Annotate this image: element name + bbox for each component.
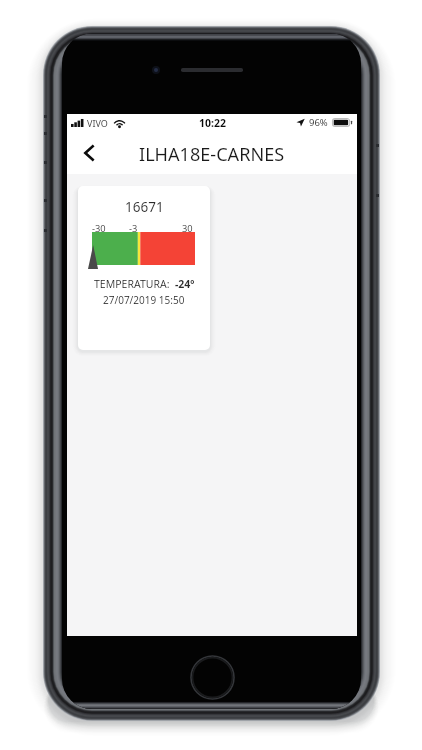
staticText: -3 [129,222,138,235]
button[interactable]: Back [71,133,107,172]
staticText: 27/07/2019 15:50 [103,293,185,307]
staticText: ILHA18E-CARNES [139,142,285,167]
staticText: -24º [175,277,195,291]
staticText: 16671 [125,198,164,216]
staticText: TEMPERATURA: [94,277,170,291]
staticText: VIVO [87,117,108,129]
staticText: 10:22 [199,116,226,130]
staticText: -30 [92,222,106,235]
staticText: 30 [182,222,193,235]
button[interactable]: 16671 [78,186,210,350]
staticText: 96% [309,116,328,129]
